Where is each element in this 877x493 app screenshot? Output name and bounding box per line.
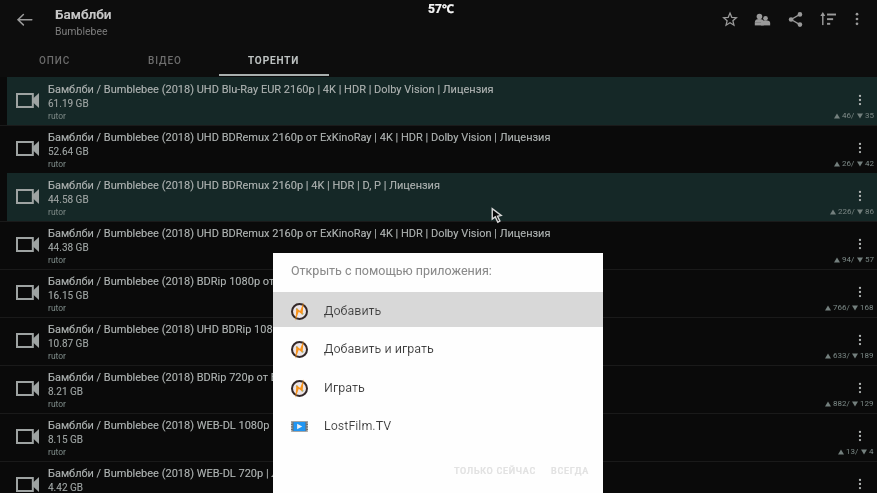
button[interactable]: Играть xyxy=(273,369,603,404)
staticText: ВІДЕО xyxy=(148,55,182,67)
button[interactable]: Share xyxy=(781,5,809,33)
staticText: rutor xyxy=(48,255,66,265)
staticText: rutor xyxy=(48,159,66,169)
staticText: Бамблби / Bumblebee (2018) UHD BDRip 108… xyxy=(48,323,413,336)
staticText: 35 xyxy=(863,111,874,120)
staticText: 13/ xyxy=(844,447,861,456)
button[interactable]: ОПИС xyxy=(10,45,100,77)
button[interactable]: Добавить xyxy=(273,292,603,327)
staticText: rutor xyxy=(48,447,66,457)
staticText: 8.21 GB xyxy=(48,386,84,398)
staticText: Bumblebee xyxy=(55,25,108,37)
staticText: Бамблби xyxy=(55,6,112,22)
button[interactable]: Бамблби / Bumblebee (2018) WEB-DL 720p |… xyxy=(0,461,877,493)
staticText: rutor xyxy=(48,399,66,409)
staticText: 57 xyxy=(863,255,874,264)
staticText: ТОРЕНТИ xyxy=(248,55,300,67)
staticText: 52.64 GB xyxy=(48,146,89,158)
staticText: 44.58 GB xyxy=(48,194,89,206)
button[interactable]: Бамблби / Bumblebee (2018) UHD BDRemux 2… xyxy=(0,125,877,173)
button[interactable]: Torrent options xyxy=(848,88,872,112)
button[interactable]: ВІДЕО xyxy=(120,45,210,77)
staticText: 633/ xyxy=(831,351,852,360)
button[interactable]: Бамблби / Bumblebee (2018) BDRip 1080p о… xyxy=(0,269,877,317)
button[interactable]: Back xyxy=(11,5,39,33)
staticText: Играть xyxy=(324,380,365,395)
staticText: 94/ xyxy=(840,255,857,264)
staticText: 129 xyxy=(858,399,874,408)
button[interactable]: Добавить и играть xyxy=(273,330,603,365)
button[interactable]: ТОРЕНТИ xyxy=(219,45,329,77)
button[interactable]: Бамблби / Bumblebee (2018) UHD BDRemux 2… xyxy=(0,221,877,269)
staticText: 46/ xyxy=(840,111,857,120)
button[interactable]: Torrent options xyxy=(848,328,872,352)
button[interactable]: ВСЕГДА xyxy=(545,457,595,485)
staticText: Бамблби / Bumblebee (2018) BDRip 720p от… xyxy=(48,371,382,384)
staticText: 766/ xyxy=(831,303,852,312)
staticText: ТОЛЬКО СЕЙЧАС xyxy=(454,466,537,477)
staticText: 57℃ xyxy=(428,0,454,16)
button[interactable]: ТОЛЬКО СЕЙЧАС xyxy=(449,457,541,485)
staticText: rutor xyxy=(48,351,66,361)
button[interactable]: Бамблби / Bumblebee (2018) UHD Blu-Ray E… xyxy=(0,77,877,125)
staticText: Бамблби / Bumblebee (2018) BDRip 1080p о… xyxy=(48,275,508,288)
button[interactable]: Torrent options xyxy=(848,424,872,448)
staticText: 226/ xyxy=(836,207,857,216)
staticText: Добавить xyxy=(324,303,382,318)
staticText: 16.15 GB xyxy=(48,290,89,302)
staticText: 42 xyxy=(863,159,874,168)
button[interactable]: Бамблби / Bumblebee (2018) WEB-DL 1080p … xyxy=(0,413,877,461)
staticText: Бамблби / Bumblebee (2018) WEB-DL 720p |… xyxy=(48,467,323,480)
staticText: ОПИС xyxy=(39,55,71,67)
staticText: 8.15 GB xyxy=(48,434,84,446)
staticText: 61.19 GB xyxy=(48,98,89,110)
staticText: 44.38 GB xyxy=(48,242,89,254)
staticText: Бамблби / Bumblebee (2018) UHD BDRemux 2… xyxy=(48,131,551,144)
button[interactable]: Torrent options xyxy=(848,376,872,400)
button[interactable]: Бамблби / Bumblebee (2018) UHD BDRemux 2… xyxy=(0,173,877,221)
staticText: 4 xyxy=(867,447,874,456)
staticText: rutor xyxy=(48,111,66,121)
button[interactable]: Torrent options xyxy=(848,184,872,208)
button[interactable]: Torrent options xyxy=(848,232,872,256)
button[interactable]: More options xyxy=(843,5,871,33)
staticText: 882/ xyxy=(831,399,852,408)
button[interactable]: Torrent options xyxy=(848,280,872,304)
staticText: 189 xyxy=(858,351,874,360)
staticText: rutor xyxy=(48,303,66,313)
button[interactable]: Watchers xyxy=(748,5,776,33)
staticText: Бамблби / Bumblebee (2018) UHD BDRemux 2… xyxy=(48,227,551,240)
button[interactable]: Favorite xyxy=(716,5,744,33)
staticText: ВСЕГДА xyxy=(551,466,589,477)
staticText: 4.42 GB xyxy=(48,482,84,493)
staticText: Открыть с помощью приложения: xyxy=(291,263,492,278)
button[interactable]: Sort xyxy=(814,5,842,33)
button[interactable]: Torrent options xyxy=(848,472,872,493)
staticText: 26/ xyxy=(840,159,857,168)
button[interactable]: LostFilm.TV xyxy=(273,407,603,442)
button[interactable]: Бамблби / Bumblebee (2018) UHD BDRip 108… xyxy=(0,317,877,365)
staticText: 10.87 GB xyxy=(48,338,89,350)
staticText: rutor xyxy=(48,207,66,217)
staticText: Бамблби / Bumblebee (2018) UHD Blu-Ray E… xyxy=(48,83,494,96)
staticText: 86 xyxy=(863,207,874,216)
staticText: 168 xyxy=(858,303,874,312)
staticText: Добавить и играть xyxy=(324,341,434,356)
staticText: Бамблби / Bumblebee (2018) WEB-DL 1080p … xyxy=(48,419,329,432)
button[interactable]: Бамблби / Bumblebee (2018) BDRip 720p от… xyxy=(0,365,877,413)
button[interactable]: Torrent options xyxy=(848,136,872,160)
staticText: LostFilm.TV xyxy=(324,418,392,433)
staticText: Бамблби / Bumblebee (2018) UHD BDRemux 2… xyxy=(48,179,440,192)
